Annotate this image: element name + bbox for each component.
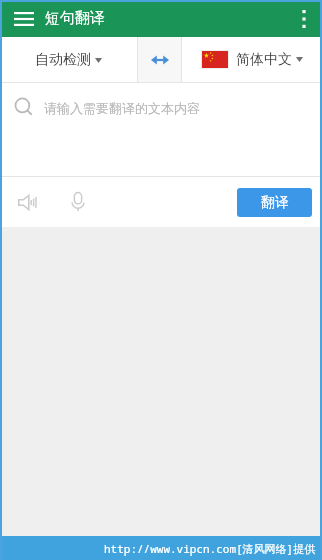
staticText: 翻译 (261, 194, 289, 212)
button[interactable]: 翻译 (237, 188, 312, 217)
staticText: 请输入需要翻译的文本内容 (44, 100, 200, 116)
staticText: 简体中文 (236, 51, 292, 69)
staticText: 自动检测 (35, 51, 91, 69)
button[interactable]: Play sound (10, 184, 46, 220)
staticText: 短句翻译 (45, 9, 105, 28)
button[interactable]: Swap languages (138, 37, 181, 82)
staticText: http://www.vipcn.com[清风网络]提供 (104, 541, 316, 556)
button[interactable]: 请输入需要翻译的文本内容 (0, 83, 322, 176)
button[interactable]: 自动检测 (0, 37, 137, 82)
button[interactable]: 简体中文 (182, 37, 322, 82)
button[interactable]: Voice input (60, 184, 96, 220)
button[interactable]: Menu (9, 4, 39, 34)
button[interactable]: More options (285, 0, 322, 37)
